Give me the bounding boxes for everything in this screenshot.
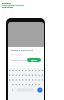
staticText: Введите код из SMS	[11, 49, 34, 52]
button[interactable]: Введите код из SMS	[8, 47, 44, 65]
button[interactable]: Далее	[27, 58, 41, 62]
staticText: Выслать ещё раз	[11, 59, 27, 62]
other: Keyboard	[8, 65, 44, 100]
staticText: Введите КОД АВТОРИЗАЦИИ для входа	[2, 1, 25, 9]
staticText: Далее	[31, 59, 37, 62]
staticText: — — — —	[11, 53, 22, 56]
